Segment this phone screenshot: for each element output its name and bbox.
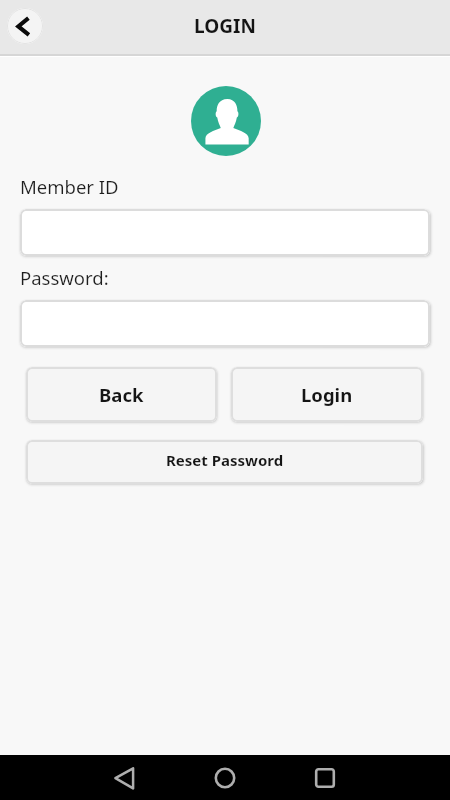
staticText: Member ID — [20, 174, 119, 199]
button[interactable]: Login — [231, 367, 423, 422]
staticText: LOGIN — [194, 13, 256, 39]
button[interactable]: Back — [108, 761, 142, 795]
button[interactable]: Back — [26, 367, 217, 422]
button[interactable]: Recents — [308, 761, 342, 795]
staticText: Login — [301, 382, 353, 407]
button[interactable]: Reset Password — [26, 440, 423, 484]
button[interactable] — [20, 300, 430, 347]
button[interactable]: Home — [208, 761, 242, 795]
staticText: Back — [99, 382, 144, 407]
staticText: Reset Password — [166, 450, 284, 470]
button[interactable]: Back — [7, 8, 43, 44]
staticText: Password: — [20, 265, 109, 290]
button[interactable] — [20, 209, 430, 256]
